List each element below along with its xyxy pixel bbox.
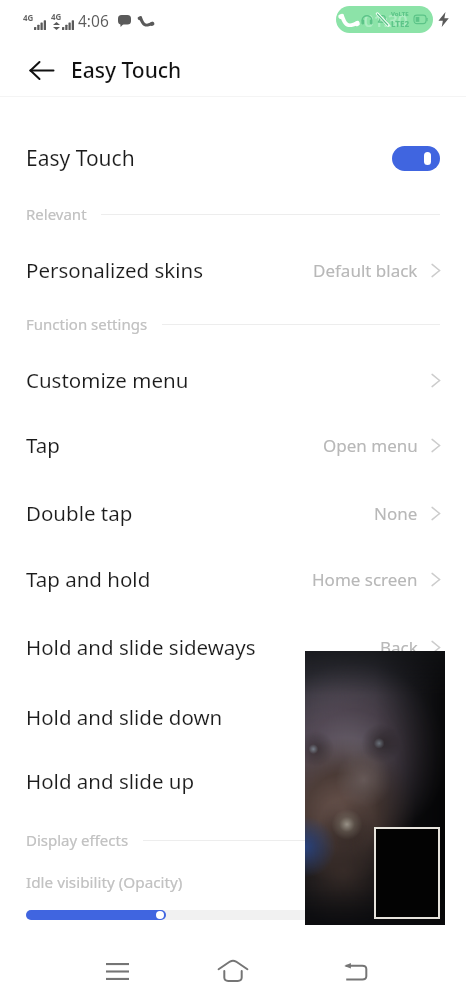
button[interactable]: Tap and hold (0, 547, 466, 611)
staticText: Hold and slide up (26, 767, 195, 795)
staticText: Relevant (26, 204, 87, 224)
staticText: Easy Touch (71, 56, 182, 85)
staticText: 4G (51, 11, 62, 22)
staticText: Personalized skins (26, 256, 204, 284)
button[interactable]: Video call window (305, 651, 445, 925)
button[interactable]: Recent apps (95, 949, 139, 993)
staticText: Idle visibility (Opacity) (26, 872, 183, 893)
staticText: Display effects (26, 830, 129, 850)
staticText: 4:06 (78, 10, 109, 31)
staticText: Double tap (26, 499, 133, 527)
button[interactable]: Hold and slide sideways (0, 615, 466, 679)
button[interactable]: Hold and slide up (0, 749, 466, 813)
staticText: Home screen (312, 568, 418, 591)
button[interactable]: Hold and slide down (0, 685, 466, 749)
staticText: Customize menu (26, 366, 189, 394)
button[interactable]: Double tap (0, 481, 466, 545)
button[interactable]: Customize menu (0, 348, 466, 412)
staticText: Tap and hold (26, 565, 151, 593)
staticText: VoLTE (391, 10, 409, 18)
button[interactable]: Tap (0, 413, 466, 477)
staticText: 4G (23, 12, 34, 23)
button[interactable]: Home (211, 949, 255, 993)
button[interactable]: Easy Touch (0, 128, 466, 188)
staticText: None (374, 502, 418, 525)
staticText: Function settings (26, 314, 148, 334)
staticText: LTE2 (391, 18, 409, 29)
staticText: Default black (313, 259, 418, 282)
staticText: Easy Touch (26, 144, 135, 173)
button[interactable]: Back (333, 949, 377, 993)
staticText: Hold and slide sideways (26, 633, 256, 661)
staticText: 01:30 (364, 9, 408, 32)
staticText: Open menu (323, 434, 418, 457)
staticText: Hold and slide down (26, 703, 223, 731)
button[interactable]: Back (21, 50, 61, 90)
staticText: Back (380, 636, 418, 659)
button[interactable]: Personalized skins (0, 238, 466, 302)
staticText: Tap (26, 431, 60, 459)
